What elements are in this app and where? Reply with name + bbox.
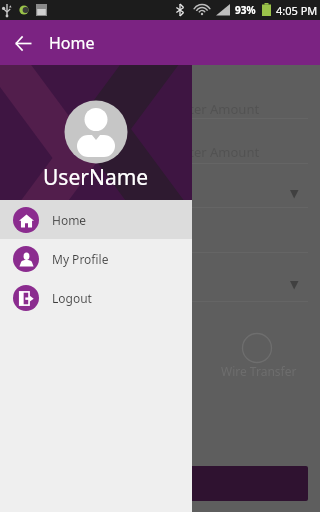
staticText: My Profile (52, 251, 109, 267)
button[interactable]: My Profile (0, 239, 192, 278)
staticText: Home (52, 212, 87, 228)
button[interactable]: Home (0, 200, 192, 239)
staticText: Enter Amount (174, 100, 260, 118)
staticText: 4:05 PM (276, 3, 318, 18)
staticText: Home (49, 32, 95, 54)
staticText: UserName (43, 163, 149, 192)
button[interactable]: Back (9, 29, 37, 57)
staticText: 93% (235, 3, 256, 17)
button[interactable]: Logout (0, 278, 192, 317)
button[interactable]: PROCEED (12, 466, 308, 501)
staticText: Wire Transfer (221, 363, 297, 379)
staticText: Enter Amount (174, 143, 260, 161)
staticText: Logout (52, 290, 92, 306)
